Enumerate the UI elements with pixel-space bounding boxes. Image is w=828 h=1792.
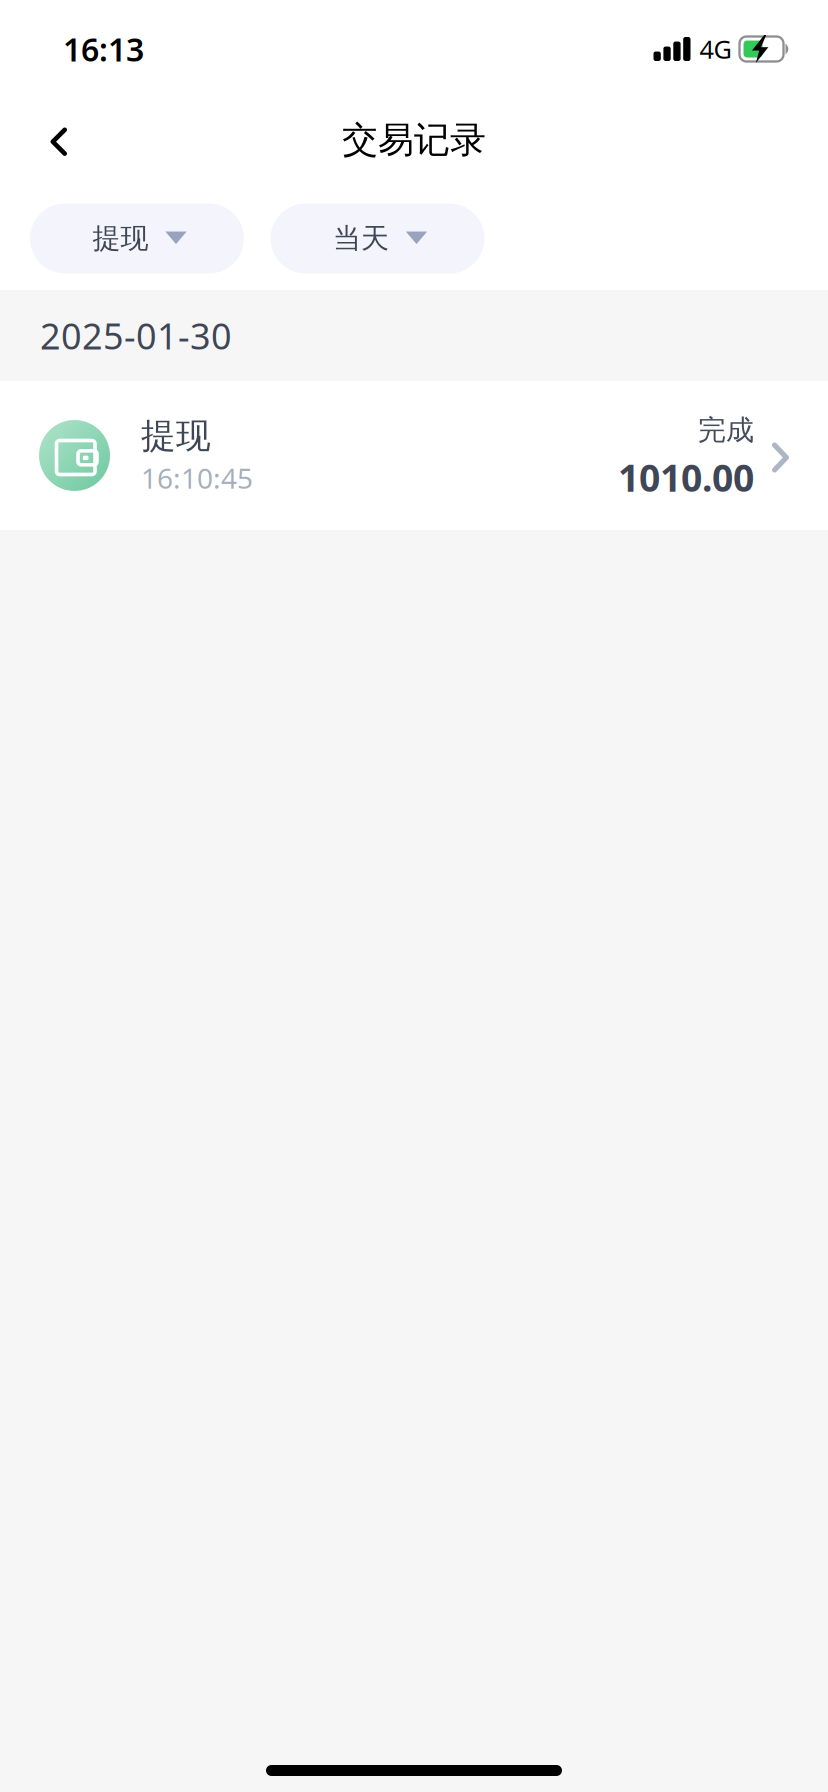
staticText: 2025-01-30 (40, 312, 232, 359)
staticText: 16:13 (63, 28, 144, 70)
staticText: 16:10:45 (141, 459, 253, 496)
button[interactable]: 当天 (270, 203, 484, 273)
staticText: 提现 (141, 415, 211, 457)
button[interactable]: 提现 (30, 203, 244, 273)
staticText: 当天 (333, 221, 389, 256)
staticText: 4G (699, 32, 731, 66)
staticText: 交易记录 (342, 118, 486, 162)
button[interactable]: Back (21, 103, 95, 177)
staticText: 提现 (92, 221, 148, 256)
staticText: 完成 (698, 413, 754, 447)
button[interactable]: 提现 (0, 381, 828, 530)
staticText: 1010.00 (618, 452, 754, 502)
